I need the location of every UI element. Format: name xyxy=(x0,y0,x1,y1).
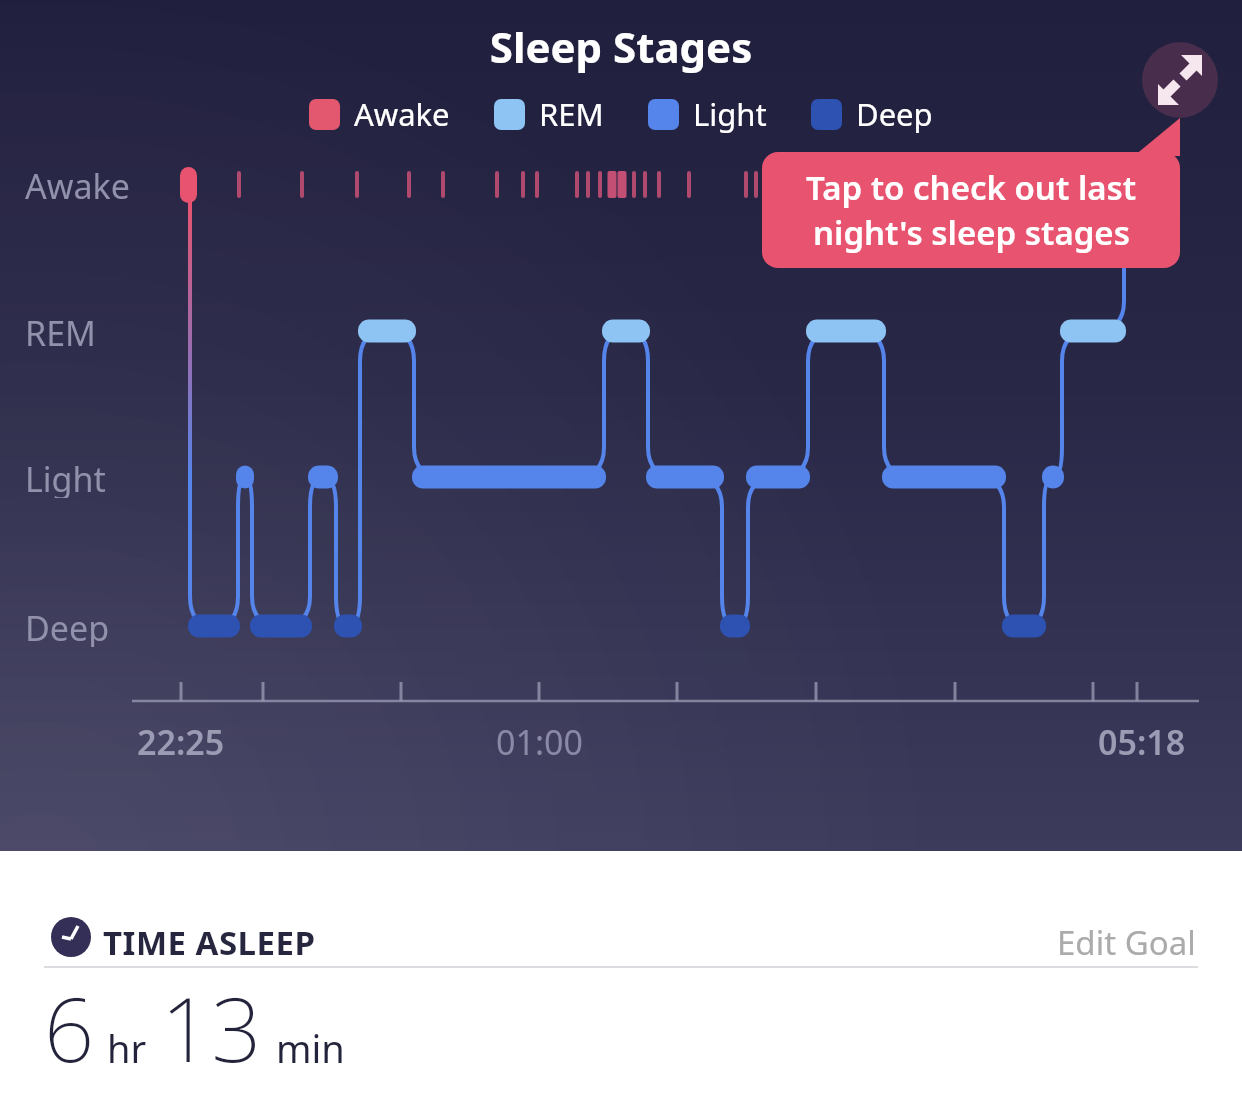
staticText: Edit Goal xyxy=(1057,920,1196,965)
staticText: 6 xyxy=(44,968,95,1088)
button[interactable]: Tap to check out last xyxy=(762,152,1180,268)
staticText: Tap to check out last xyxy=(806,165,1137,210)
button[interactable]: Edit Goal xyxy=(1057,920,1196,965)
staticText: 05:18 xyxy=(1098,719,1186,765)
staticText: Deep xyxy=(25,605,110,647)
button[interactable] xyxy=(1142,42,1218,118)
staticText: hr xyxy=(107,1022,147,1074)
staticText: min xyxy=(276,1022,345,1074)
staticText: Sleep Stages xyxy=(0,18,1242,75)
staticText: Deep xyxy=(856,93,933,135)
staticText: 01:00 xyxy=(496,719,583,765)
staticText: Light xyxy=(693,93,767,135)
staticText: night's sleep stages xyxy=(813,210,1130,255)
staticText: Light xyxy=(25,456,106,498)
staticText: TIME ASLEEP xyxy=(103,920,316,965)
staticText: 22:25 xyxy=(137,719,225,765)
staticText: 13 xyxy=(161,968,262,1088)
staticText: Awake xyxy=(354,93,450,135)
staticText: Awake xyxy=(25,163,130,205)
staticText: REM xyxy=(539,93,604,135)
staticText: REM xyxy=(25,310,96,352)
